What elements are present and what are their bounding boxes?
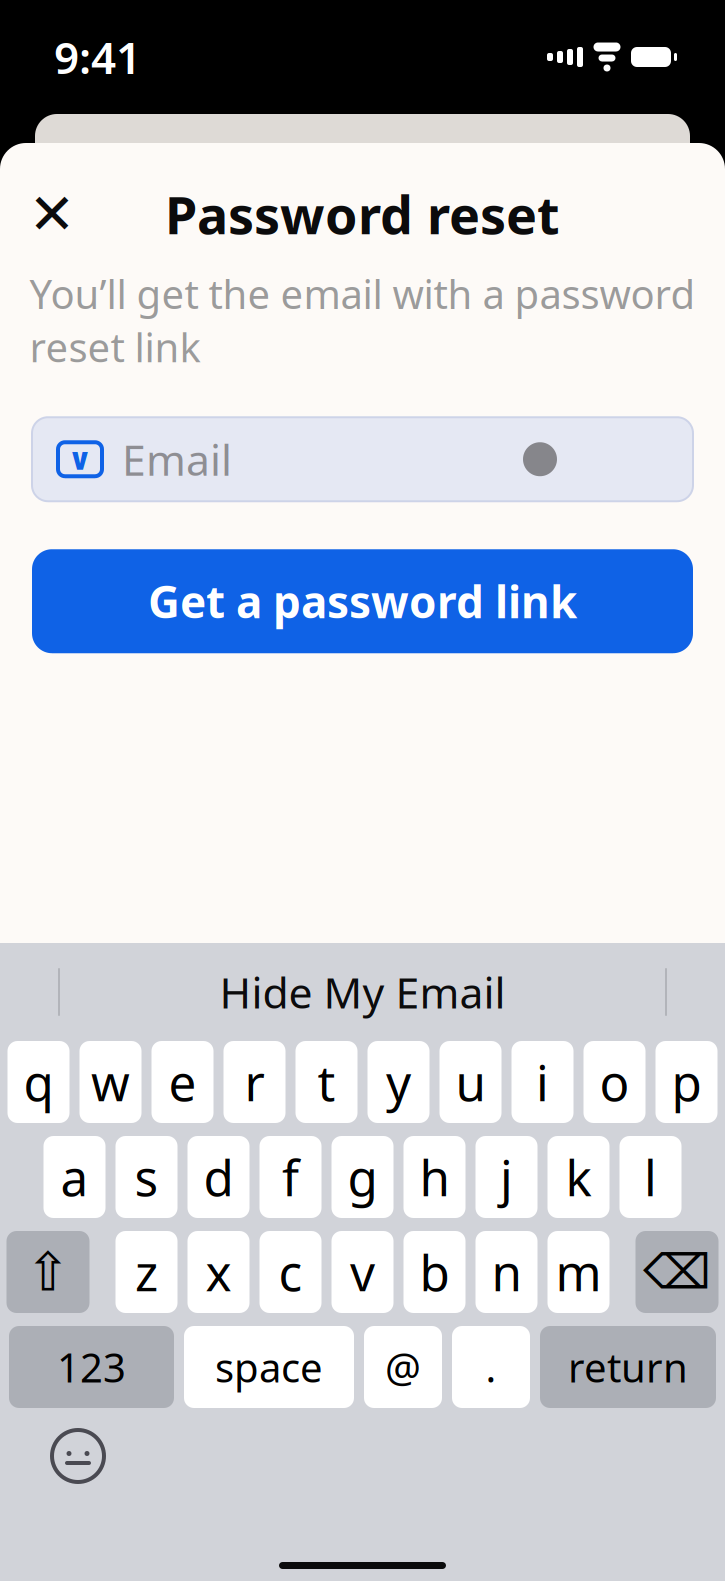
staticText: x — [205, 1239, 231, 1305]
staticText: z — [135, 1239, 158, 1305]
staticText: o — [599, 1049, 629, 1115]
button[interactable]: o — [583, 1041, 645, 1123]
staticText: y — [386, 1049, 411, 1115]
staticText: a — [60, 1144, 88, 1210]
staticText: u — [455, 1049, 485, 1115]
staticText: Hide My Email — [219, 964, 505, 1020]
button[interactable]: Close — [18, 180, 86, 248]
staticText: ⇧ — [25, 1242, 70, 1302]
button[interactable]: d — [187, 1136, 249, 1218]
staticText: 9:41 — [54, 28, 141, 86]
button[interactable]: h — [403, 1136, 465, 1218]
button[interactable]: Get a password link — [32, 549, 693, 653]
staticText: ⌫ — [643, 1245, 711, 1299]
staticText: 123 — [57, 1340, 126, 1393]
staticText: Email — [122, 431, 232, 488]
button[interactable]: x — [187, 1231, 249, 1313]
button[interactable]: j — [475, 1136, 537, 1218]
staticText: n — [491, 1239, 521, 1305]
button[interactable]: w — [79, 1041, 141, 1123]
staticText: g — [347, 1144, 377, 1210]
staticText: w — [91, 1049, 130, 1115]
staticText: @ — [385, 1340, 421, 1393]
staticText: space — [215, 1340, 323, 1393]
staticText: e — [168, 1049, 196, 1115]
button[interactable]: Hide My Email — [147, 957, 577, 1027]
staticText: s — [134, 1144, 158, 1210]
button[interactable]: space — [184, 1326, 354, 1408]
staticText: ∨ — [67, 442, 92, 477]
button[interactable]: i — [511, 1041, 573, 1123]
button[interactable]: l — [619, 1136, 681, 1218]
staticText: return — [568, 1340, 688, 1393]
staticText: l — [644, 1144, 657, 1210]
button[interactable]: f — [259, 1136, 321, 1218]
staticText: . — [485, 1340, 496, 1393]
staticText: m — [555, 1239, 601, 1305]
staticText: k — [565, 1144, 591, 1210]
button[interactable]: v — [331, 1231, 393, 1313]
button[interactable]: b — [403, 1231, 465, 1313]
button[interactable]: g — [331, 1136, 393, 1218]
staticText: c — [278, 1239, 302, 1305]
button[interactable]: 123 — [9, 1326, 174, 1408]
staticText: f — [282, 1144, 299, 1210]
staticText: t — [317, 1049, 335, 1115]
button[interactable]: ∨ — [32, 417, 693, 501]
button[interactable]: z — [115, 1231, 177, 1313]
button[interactable]: q — [7, 1041, 69, 1123]
staticText: j — [500, 1144, 513, 1210]
staticText: i — [536, 1049, 549, 1115]
button[interactable]: Emoji keyboard — [46, 1424, 110, 1488]
button[interactable]: t — [295, 1041, 357, 1123]
button[interactable]: y — [367, 1041, 429, 1123]
staticText: r — [244, 1049, 264, 1115]
staticText: h — [419, 1144, 449, 1210]
button[interactable]: n — [475, 1231, 537, 1313]
button[interactable]: return — [540, 1326, 716, 1408]
staticText: You’ll get the email with a password res… — [29, 267, 695, 373]
button[interactable]: c — [259, 1231, 321, 1313]
button[interactable]: e — [151, 1041, 213, 1123]
button[interactable]: m — [547, 1231, 609, 1313]
button[interactable]: . — [452, 1326, 530, 1408]
staticText: b — [419, 1239, 449, 1305]
staticText: ✕ — [28, 182, 75, 246]
button[interactable]: a — [43, 1136, 105, 1218]
button[interactable]: s — [115, 1136, 177, 1218]
staticText: Get a password link — [148, 572, 577, 630]
staticText: q — [23, 1049, 53, 1115]
button[interactable]: u — [439, 1041, 501, 1123]
staticText: Password reset — [165, 179, 560, 249]
button[interactable]: k — [547, 1136, 609, 1218]
button[interactable]: Delete — [635, 1231, 718, 1313]
staticText: v — [350, 1239, 375, 1305]
button[interactable]: r — [223, 1041, 285, 1123]
button[interactable]: p — [655, 1041, 717, 1123]
staticText: d — [203, 1144, 233, 1210]
staticText: p — [671, 1049, 701, 1115]
button[interactable]: Shift — [6, 1231, 89, 1313]
button[interactable]: @ — [364, 1326, 442, 1408]
